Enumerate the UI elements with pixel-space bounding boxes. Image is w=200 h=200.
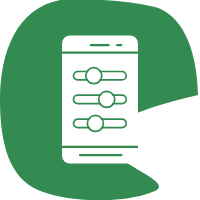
button[interactable]: Mobile settings sliders icon bbox=[0, 0, 200, 200]
